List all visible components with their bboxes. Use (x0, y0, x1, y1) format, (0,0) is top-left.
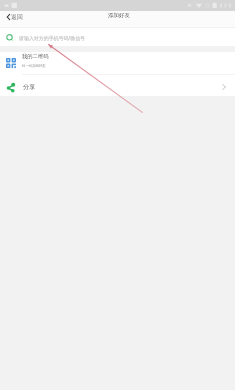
staticText: 请输入对方的手机号码/微信号 (19, 35, 86, 42)
staticText: 添加好友 (3, 12, 235, 19)
button[interactable] (0, 75, 235, 96)
button[interactable] (0, 52, 235, 75)
staticText: 我的二维码 (22, 53, 49, 60)
other: Open share (218, 80, 230, 94)
staticText: 分享 (23, 83, 36, 91)
button[interactable] (0, 28, 235, 46)
staticText: 扫一扫加我好友 (22, 64, 46, 68)
staticText: 返回 (11, 13, 23, 20)
button[interactable]: 返回 (6, 11, 29, 22)
